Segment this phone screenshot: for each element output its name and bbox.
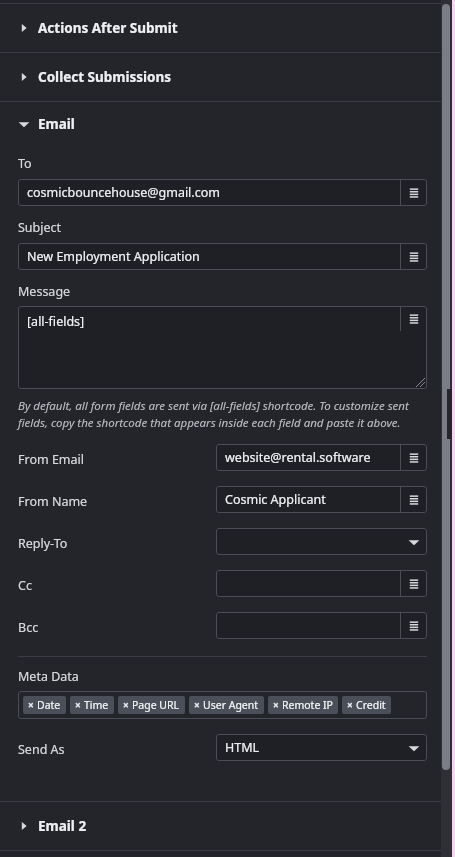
staticText: × [123, 698, 129, 712]
button[interactable]: website@rental.software [216, 444, 427, 471]
staticText: cosmicbouncehouse@gmail.com [27, 184, 220, 201]
staticText: Bcc [18, 619, 39, 636]
staticText: Actions After Submit [38, 19, 178, 37]
button[interactable]: HTML [216, 734, 427, 761]
button[interactable]: × [189, 696, 264, 714]
staticText: Remote IP [282, 698, 333, 712]
button[interactable] [216, 528, 427, 555]
staticText: × [75, 698, 81, 712]
button[interactable]: Email 2 [0, 802, 441, 850]
staticText: Send As [18, 741, 65, 758]
staticText: Time [84, 698, 109, 712]
staticText: × [347, 698, 353, 712]
staticText: Email [38, 115, 75, 133]
staticText: User Agent [203, 698, 259, 712]
button[interactable]: × [268, 696, 338, 714]
staticText: Cosmic Applicant [225, 491, 326, 508]
button[interactable]: Insert shortcode [400, 306, 427, 331]
button[interactable]: [all-fields] [18, 306, 427, 389]
button[interactable]: × [23, 696, 66, 714]
button[interactable]: Insert shortcode [400, 612, 427, 639]
staticText: From Email [18, 451, 85, 468]
staticText: From Name [18, 493, 88, 510]
staticText: Reply-To [18, 535, 68, 552]
staticText: Page URL [132, 698, 180, 712]
button[interactable]: cosmicbouncehouse@gmail.com [18, 179, 427, 206]
staticText: Subject [18, 219, 62, 236]
staticText: Credit [356, 698, 386, 712]
staticText: × [273, 698, 279, 712]
button[interactable]: Insert shortcode [400, 243, 427, 270]
button[interactable]: Collect Submissions [0, 53, 441, 101]
staticText: website@rental.software [225, 449, 371, 466]
button[interactable]: × [342, 696, 391, 714]
button[interactable]: Panel handle [447, 389, 455, 439]
button[interactable]: Insert shortcode [400, 570, 427, 597]
staticText: Email 2 [38, 817, 87, 835]
button[interactable]: Insert shortcode [400, 179, 427, 206]
staticText: Message [18, 283, 71, 300]
staticText: Cc [18, 577, 32, 594]
button[interactable]: Insert shortcode [216, 612, 427, 639]
staticText: [all-fields] [27, 313, 85, 330]
staticText: New Employment Application [27, 248, 200, 265]
button[interactable]: × [18, 691, 427, 719]
staticText: HTML [225, 739, 260, 756]
staticText: Meta Data [18, 668, 79, 685]
button[interactable]: Insert shortcode [400, 444, 427, 471]
button[interactable]: Actions After Submit [0, 4, 441, 52]
staticText: By default, all form fields are sent via… [18, 398, 430, 431]
button[interactable]: × [118, 696, 185, 714]
button[interactable]: New Employment Application [18, 243, 427, 270]
staticText: Date [37, 698, 61, 712]
button[interactable]: Insert shortcode [216, 570, 427, 597]
button[interactable]: Email [0, 102, 441, 146]
staticText: × [28, 698, 34, 712]
button[interactable]: Insert shortcode [400, 486, 427, 513]
button[interactable]: Cosmic Applicant [216, 486, 427, 513]
staticText: Collect Submissions [38, 68, 172, 86]
staticText: To [18, 155, 32, 172]
staticText: × [194, 698, 200, 712]
button[interactable]: × [70, 696, 114, 714]
